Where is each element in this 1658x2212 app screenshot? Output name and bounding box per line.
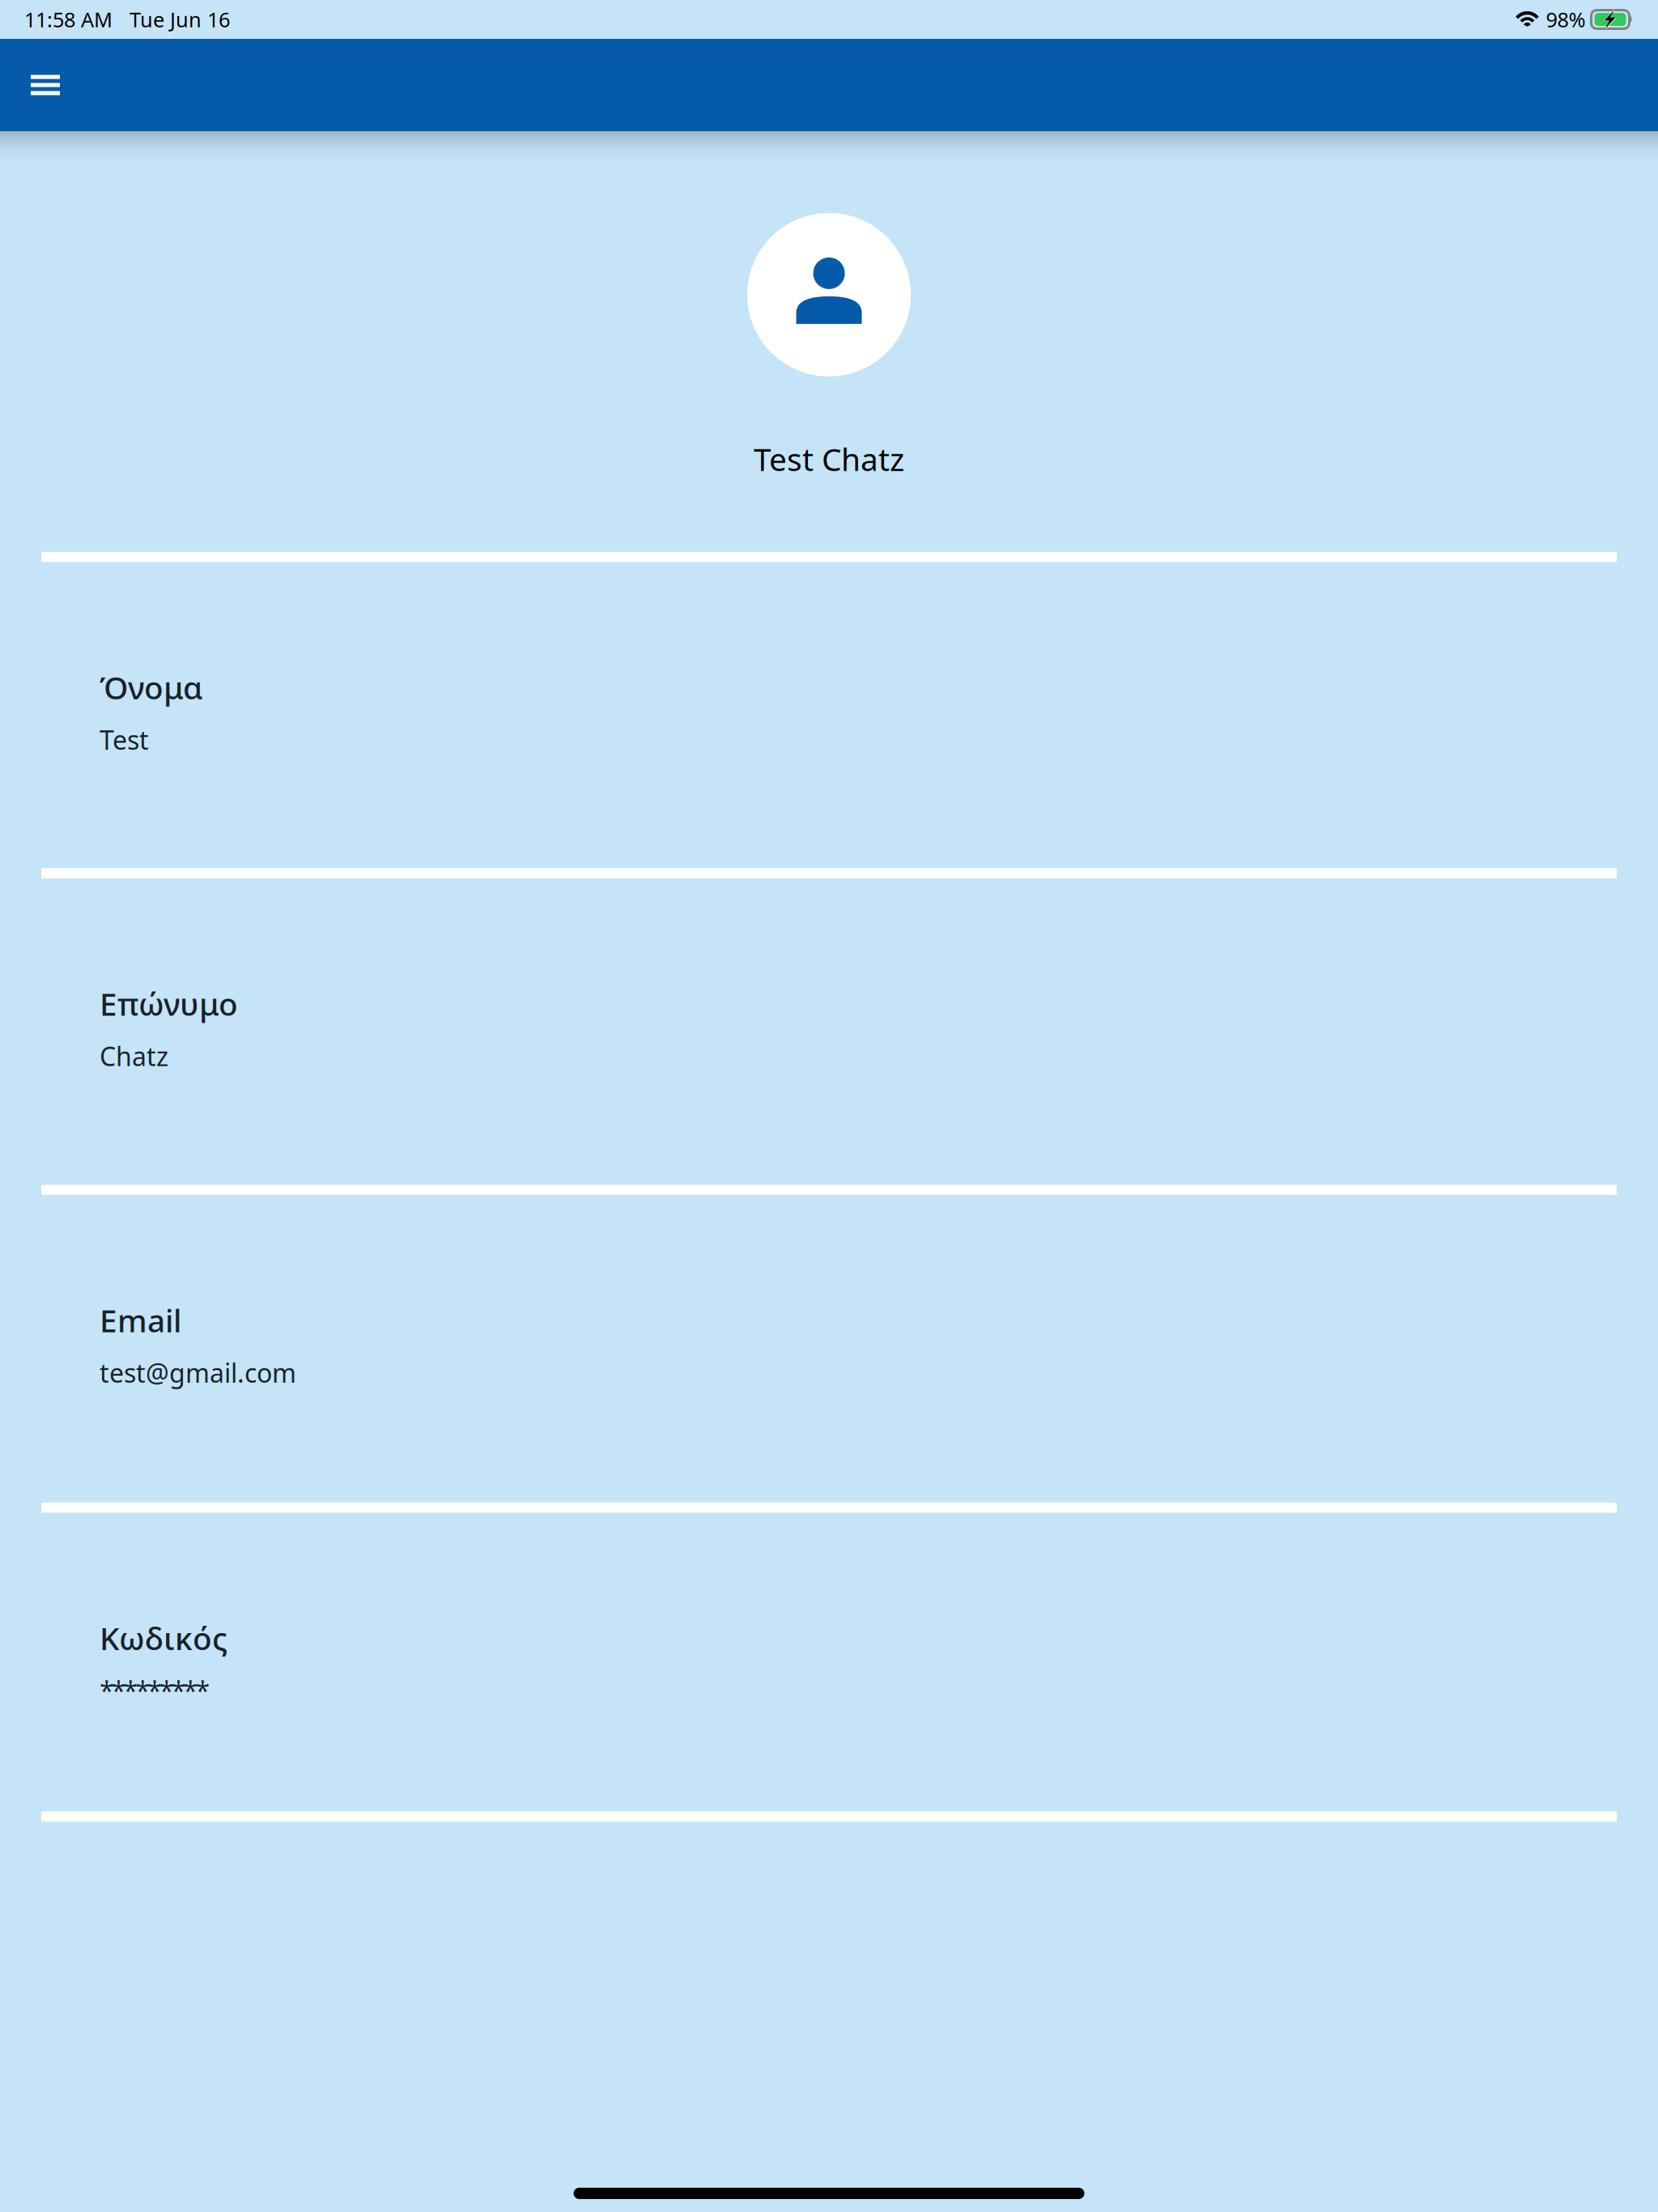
- staticText: Chatz: [100, 1039, 168, 1073]
- button[interactable]: Κωδικός: [41, 1513, 1617, 1812]
- staticText: Tue Jun 16: [130, 6, 230, 33]
- button[interactable]: Menu: [0, 39, 91, 131]
- staticText: Όνομα: [100, 666, 202, 708]
- staticText: Επώνυμο: [100, 983, 238, 1024]
- staticText: 11:58 AM: [24, 6, 113, 33]
- staticText: Test: [100, 723, 149, 757]
- button[interactable]: Επώνυμο: [41, 878, 1617, 1185]
- button[interactable]: Email: [41, 1195, 1617, 1503]
- staticText: Κωδικός: [100, 1617, 227, 1659]
- staticText: Email: [100, 1299, 181, 1341]
- staticText: 98%: [1546, 6, 1586, 33]
- staticText: *********: [100, 1673, 210, 1708]
- staticText: Test Chatz: [754, 438, 904, 480]
- staticText: test@gmail.com: [100, 1355, 296, 1390]
- button[interactable]: Όνομα: [41, 562, 1617, 868]
